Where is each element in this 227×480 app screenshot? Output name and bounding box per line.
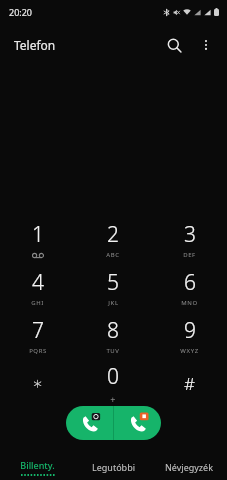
staticText: 7 xyxy=(32,316,44,345)
button[interactable]: # xyxy=(151,360,227,406)
staticText: Legutóbbi xyxy=(92,461,135,473)
button[interactable]: 4 xyxy=(0,264,75,310)
staticText: WXYZ xyxy=(180,347,199,355)
staticText: PQRS xyxy=(29,347,47,355)
button[interactable]: 5 xyxy=(75,264,151,310)
staticText: Névjegyzék xyxy=(165,461,213,473)
staticText: TUV xyxy=(106,347,120,355)
staticText: JKL xyxy=(108,299,119,307)
button[interactable]: Call with SIM 1 xyxy=(66,406,113,440)
staticText: DEF xyxy=(183,251,196,259)
button[interactable]: 0 xyxy=(75,360,151,406)
button[interactable]: ∗ xyxy=(0,360,75,406)
button[interactable]: 7 xyxy=(0,312,75,358)
button[interactable]: 1 xyxy=(0,216,75,262)
staticText: Billenty. xyxy=(20,459,55,471)
staticText: 0 xyxy=(107,362,119,391)
staticText: ∗ xyxy=(32,373,43,393)
staticText: 8 xyxy=(107,316,119,345)
button[interactable]: Billenty. xyxy=(0,454,75,480)
button[interactable]: Call with SIM 2 xyxy=(114,406,161,440)
staticText: MNO xyxy=(181,299,198,307)
button[interactable]: 2 xyxy=(75,216,151,262)
staticText: 9 xyxy=(184,316,196,345)
button[interactable]: 8 xyxy=(75,312,151,358)
staticText: 20:20 xyxy=(9,6,33,18)
staticText: Telefon xyxy=(14,37,56,53)
button[interactable]: 9 xyxy=(151,312,227,358)
button[interactable]: Névjegyzék xyxy=(151,454,227,480)
button[interactable]: More options xyxy=(191,30,221,60)
button[interactable]: Search xyxy=(157,28,191,62)
staticText: ABC xyxy=(106,251,120,259)
staticText: 4 xyxy=(32,268,44,297)
staticText: 3 xyxy=(184,220,196,249)
staticText: GHI xyxy=(31,299,44,307)
staticText: 1 xyxy=(32,220,44,249)
staticText: # xyxy=(184,372,195,395)
staticText: 2 xyxy=(107,220,119,249)
staticText: + xyxy=(110,393,116,405)
staticText: 6 xyxy=(184,268,196,297)
staticText: 5 xyxy=(107,268,119,297)
button[interactable]: 6 xyxy=(151,264,227,310)
button[interactable]: 3 xyxy=(151,216,227,262)
button[interactable]: Legutóbbi xyxy=(75,454,151,480)
